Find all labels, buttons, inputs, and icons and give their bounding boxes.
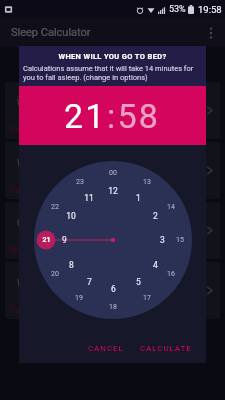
staticText: 8 [69,260,74,270]
staticText: 19:58 [198,4,222,15]
staticText: 2 [153,211,158,221]
staticText: 00 [109,169,117,177]
staticText: 53% [169,4,186,15]
staticText: Calculations assume that it will take 14… [23,64,202,82]
staticText: 9 [62,235,67,245]
button[interactable]: CANCEL [80,339,132,358]
staticText: 15 [176,236,184,244]
staticText: 7 [87,277,92,287]
staticText: 19 [75,294,83,302]
staticText: :58 [107,96,161,136]
staticText: Sleep at [10,185,43,196]
staticText: Sleep now [10,125,52,136]
staticText: CALCULATE [140,344,192,353]
staticText: Wake up at [10,245,55,256]
staticText: 4 [153,260,158,270]
staticText: Go to bed at 22:15 [17,218,87,228]
staticText: Wake up at 06:12 [17,98,83,108]
staticText: 10 [66,211,76,221]
staticText: 14 [167,203,175,211]
button[interactable]: Wake up at 06:12 [5,82,220,139]
staticText: 5 [136,277,141,287]
staticText: 21 [64,96,107,136]
staticText: WHEN WILL YOU GO TO BED? [23,52,202,61]
staticText: 11 [84,193,94,203]
staticText: 13 [143,178,151,186]
staticText: 12 [108,186,118,196]
button[interactable]: CALCULATE [132,339,206,358]
staticText: 16 [167,270,175,278]
staticText: 20 [51,270,59,278]
staticText: 1 [136,193,141,203]
staticText: 17 [143,294,151,302]
button[interactable]: Wake up at 07:42 [5,142,220,199]
staticText: 21 [42,236,51,244]
staticText: 3 [160,235,165,245]
staticText: 23 [76,178,84,186]
staticText: Wake up at 07:42 [17,158,83,168]
staticText: Sleep now [10,305,52,316]
staticText: 18 [109,303,117,311]
staticText: Sleep Calculator [11,26,91,39]
staticText: CANCEL [88,344,124,353]
button[interactable]: Go to bed at 22:15 [5,202,220,259]
button[interactable]: Wake up at 05:30 [5,262,220,319]
staticText: 22 [51,203,59,211]
button[interactable]: More options [203,25,219,41]
staticText: Wake up at 05:30 [17,278,83,288]
staticText: 6 [111,284,116,294]
